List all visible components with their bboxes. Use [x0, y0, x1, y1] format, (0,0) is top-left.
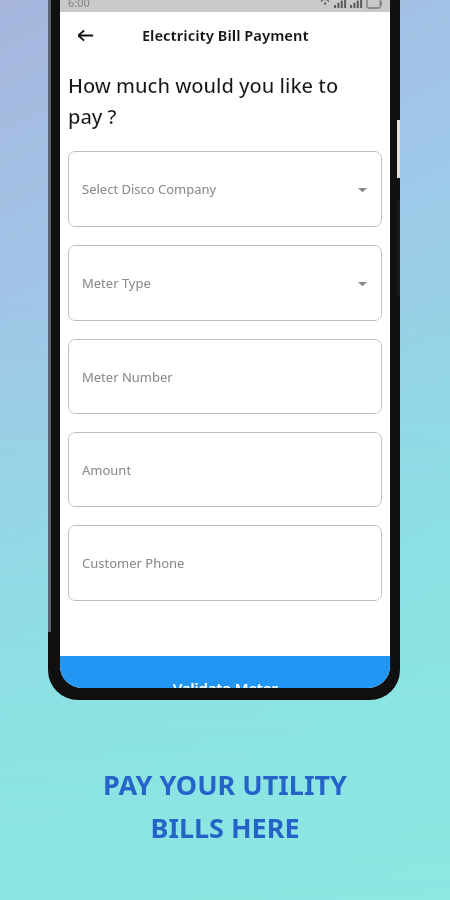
staticText: Validate Meter — [173, 678, 278, 688]
button[interactable]: Validate Meter — [60, 656, 390, 688]
staticText: PAY YOUR UTILITY — [103, 766, 347, 803]
staticText: BILLS HERE — [150, 809, 300, 846]
button[interactable]: Select Disco Company — [68, 151, 382, 227]
staticText: Meter Number — [82, 368, 173, 386]
staticText: Meter Type — [82, 274, 151, 292]
button[interactable]: Meter Type — [68, 245, 382, 321]
button[interactable]: Meter Number — [68, 339, 382, 414]
button[interactable]: Back — [68, 18, 102, 52]
staticText: Select Disco Company — [82, 180, 217, 198]
staticText: 6:00 — [68, 0, 90, 10]
staticText: Customer Phone — [82, 554, 185, 572]
staticText: Electricity Bill Payment — [142, 25, 309, 45]
staticText: Amount — [82, 461, 132, 479]
staticText: How much would you like to pay ? — [68, 72, 339, 129]
button[interactable]: Customer Phone — [68, 525, 382, 601]
button[interactable]: Amount — [68, 432, 382, 507]
